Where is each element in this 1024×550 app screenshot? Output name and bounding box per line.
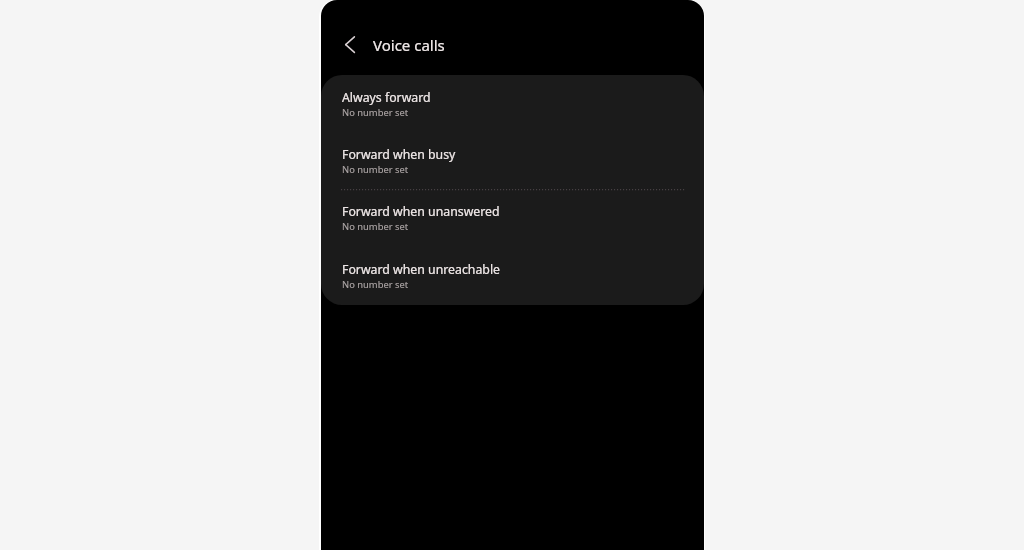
button[interactable]: Forward when unanswered (321, 189, 704, 246)
button[interactable]: Navigate up (332, 28, 365, 61)
staticText: No number set (342, 278, 409, 291)
staticText: Always forward (342, 89, 431, 106)
button[interactable]: Always forward (321, 75, 704, 132)
staticText: No number set (342, 106, 409, 119)
staticText: Forward when busy (342, 146, 456, 163)
button[interactable]: Forward when busy (321, 132, 704, 189)
staticText: No number set (342, 220, 409, 233)
staticText: Forward when unanswered (342, 203, 500, 220)
staticText: Voice calls (373, 35, 445, 55)
button[interactable]: Forward when unreachable (321, 247, 704, 304)
staticText: No number set (342, 163, 409, 176)
staticText: Forward when unreachable (342, 261, 500, 278)
